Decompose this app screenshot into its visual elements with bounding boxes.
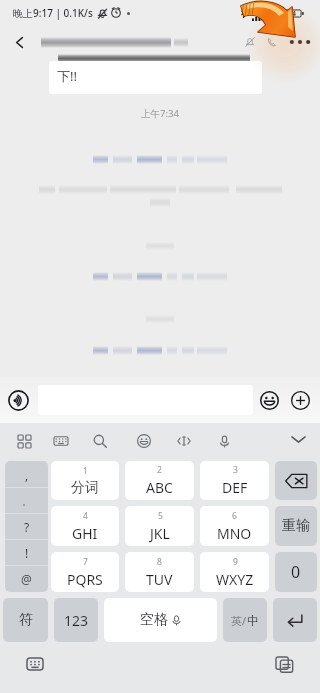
button[interactable] [273, 598, 317, 642]
staticText: 5 [158, 510, 163, 522]
button[interactable]: 5 [125, 506, 194, 546]
staticText: 空格 [140, 611, 168, 629]
staticText: ? [24, 519, 30, 535]
button[interactable]: ? [5, 514, 48, 540]
staticText: 0 [291, 561, 301, 583]
staticText: / [242, 613, 247, 628]
staticText: 44 [288, 9, 297, 19]
button[interactable]: Hide keyboard [282, 423, 314, 455]
button[interactable]: 1 [51, 461, 119, 500]
button[interactable]: Recent apps [268, 648, 300, 680]
button[interactable]: @ [5, 566, 48, 592]
staticText: @ [21, 571, 32, 587]
button[interactable]: , [5, 461, 48, 488]
button[interactable]: Move cursor [168, 425, 200, 457]
button[interactable]: Keyboard layout [45, 425, 77, 457]
staticText: 分词 [71, 479, 99, 497]
button[interactable]: 空格 [104, 598, 217, 642]
button[interactable]: 9 [200, 552, 269, 592]
staticText: DEF [222, 478, 248, 497]
staticText: 。 [22, 496, 31, 507]
button[interactable]: Apps [8, 425, 40, 457]
button[interactable]: 123 [54, 598, 98, 642]
button[interactable]: More options [283, 26, 317, 58]
staticText: 7 [83, 556, 88, 568]
staticText: GHI [72, 524, 98, 543]
staticText: 9 [233, 556, 238, 568]
button[interactable]: Emoji [255, 386, 283, 414]
staticText: WXYZ [216, 570, 254, 589]
button[interactable]: Back [6, 29, 32, 55]
button[interactable]: 6 [200, 506, 269, 546]
button[interactable]: More actions [286, 386, 314, 414]
staticText: TUV [146, 570, 173, 589]
staticText: JKL [150, 524, 170, 543]
button[interactable]: Mute notifications [239, 31, 261, 53]
button[interactable]: 0 [275, 552, 317, 592]
staticText: 上午7:34 [0, 107, 320, 120]
button[interactable]: Switch keyboard [19, 648, 51, 680]
staticText: , [25, 467, 29, 483]
staticText: ! [25, 545, 29, 561]
staticText: 3 [233, 464, 238, 476]
button[interactable]: 2 [125, 461, 194, 500]
button[interactable]: 。 [5, 488, 48, 514]
staticText: MNO [217, 524, 252, 543]
staticText: 6 [232, 510, 237, 522]
staticText: 4 [83, 510, 88, 522]
staticText: 2 [157, 464, 162, 476]
button[interactable]: 3 [200, 461, 269, 500]
button[interactable]: Voice input [3, 385, 33, 415]
button[interactable]: Voice input [208, 425, 240, 457]
button[interactable] [275, 461, 317, 500]
button[interactable]: 重输 [275, 506, 317, 546]
button[interactable]: 符 [3, 598, 48, 642]
staticText: HD [252, 6, 261, 13]
staticText: 符 [19, 611, 33, 629]
button[interactable]: Emoji [128, 425, 160, 457]
staticText: 晚上9:17 | 0.1K/s [13, 6, 93, 20]
button[interactable]: 8 [125, 552, 194, 592]
staticText: 重输 [282, 517, 310, 535]
button[interactable]: 4 [51, 506, 119, 546]
button[interactable]: Call [261, 31, 283, 53]
staticText: ABC [146, 478, 173, 497]
staticText: PQRS [67, 570, 103, 589]
button[interactable]: ! [5, 540, 48, 566]
staticText: 下!! [57, 67, 77, 85]
button[interactable]: 7 [51, 552, 119, 592]
button[interactable]: Search [84, 425, 116, 457]
staticText: 8 [157, 556, 162, 568]
staticText: 英 [231, 614, 242, 628]
staticText: 1 [83, 465, 88, 477]
staticText: 123 [64, 611, 89, 630]
staticText: 中 [247, 613, 259, 628]
button[interactable]: 英 [223, 598, 267, 642]
